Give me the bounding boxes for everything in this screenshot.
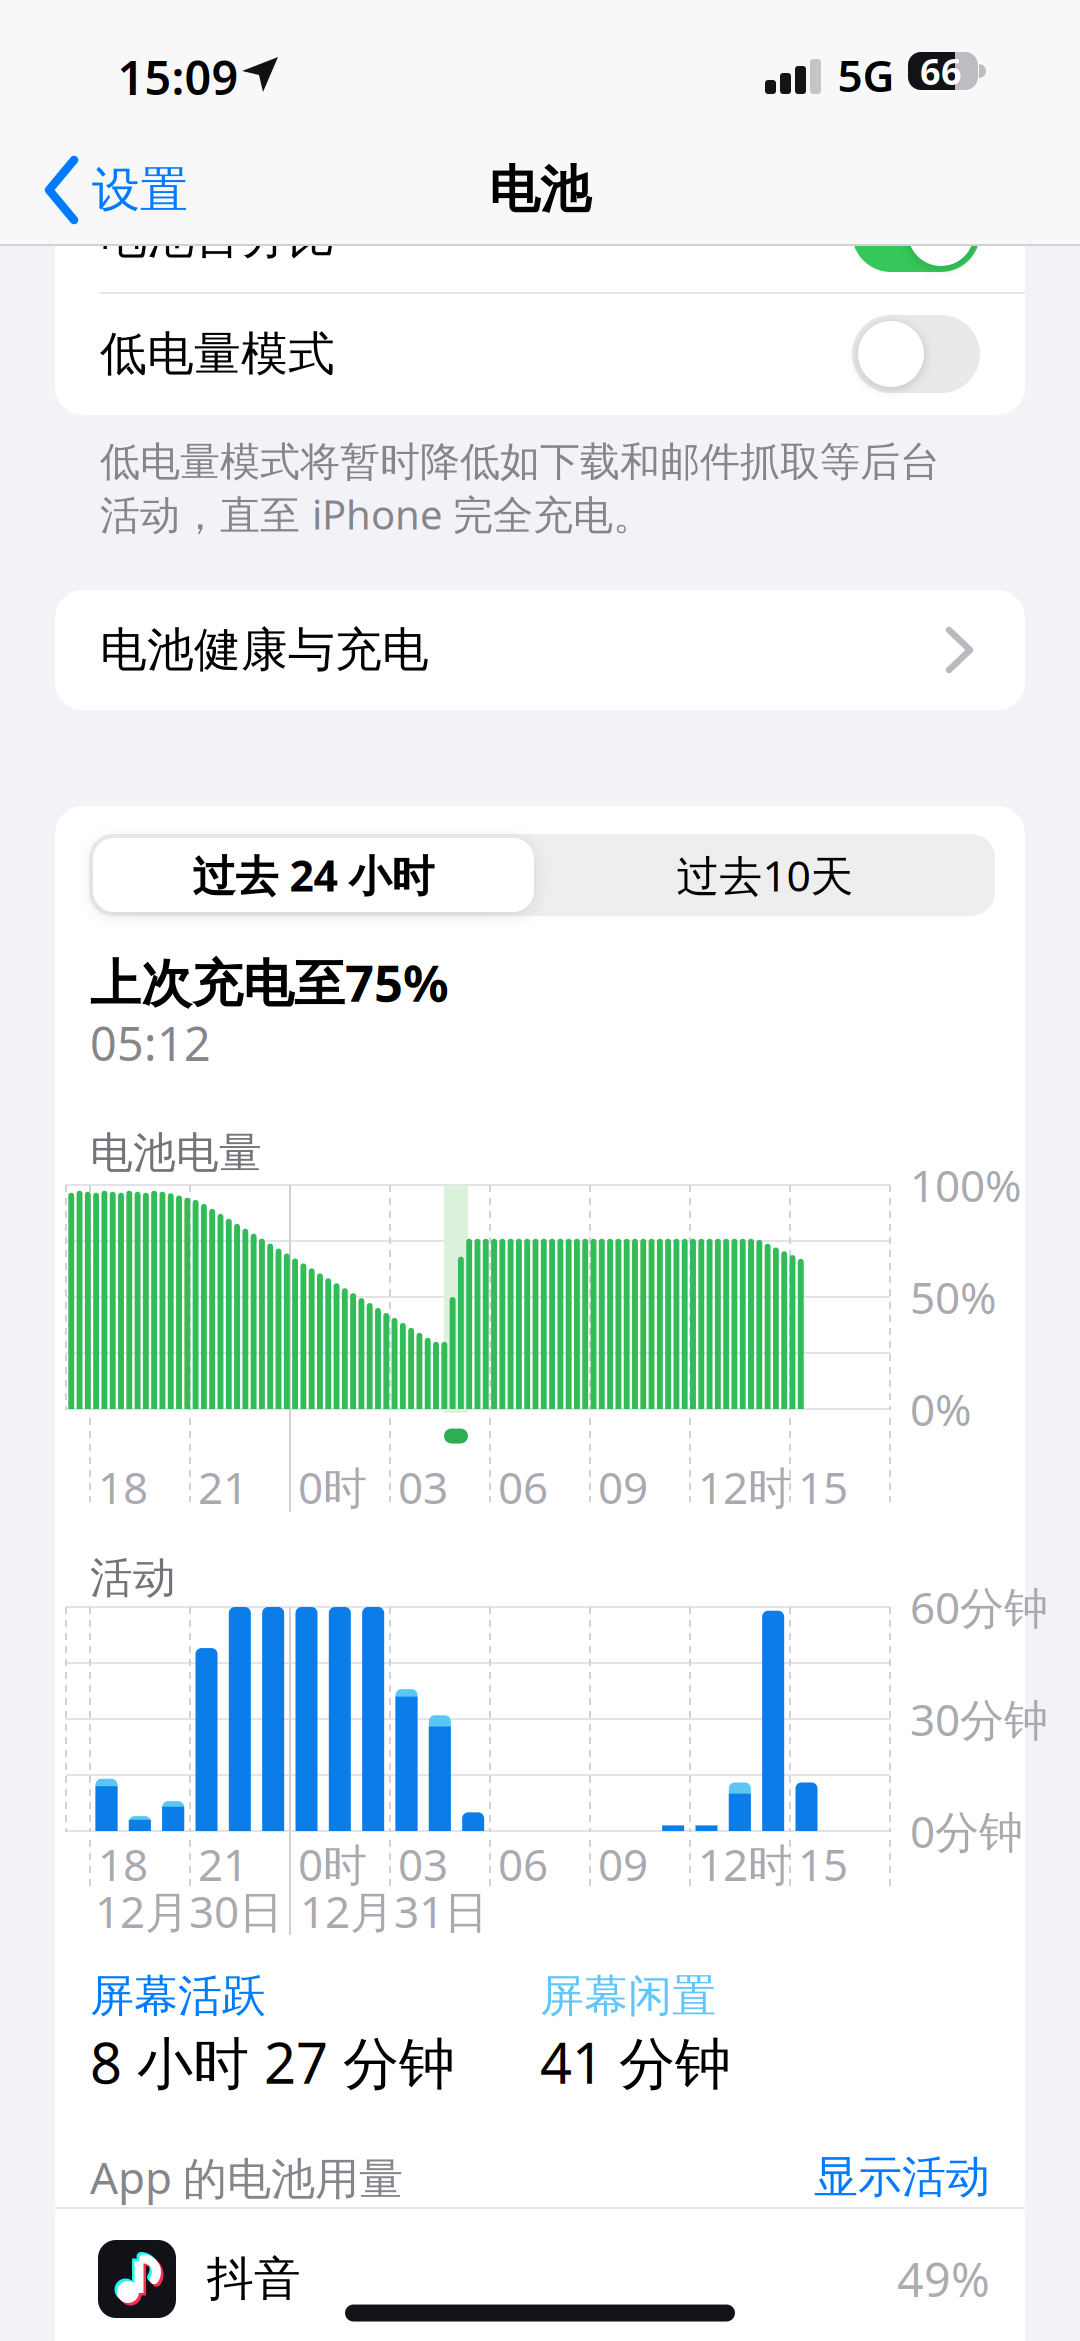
button[interactable]: 低电量模式: [852, 315, 980, 393]
staticText: 5G: [837, 46, 894, 104]
staticText: 15: [798, 1835, 848, 1893]
staticText: 屏幕活跃: [90, 1969, 266, 2023]
staticText: 电池电量: [90, 1127, 262, 1179]
staticText: 05:12: [90, 1012, 211, 1074]
staticText: 设置: [92, 160, 188, 219]
staticText: 0时: [298, 1458, 367, 1516]
staticText: 低电量模式: [100, 325, 335, 383]
staticText: 15:09: [117, 46, 238, 108]
staticText: 0时: [298, 1835, 367, 1893]
staticText: 8 小时 27 分钟: [90, 2025, 455, 2099]
staticText: 03: [398, 1835, 448, 1893]
staticText: 09: [598, 1458, 648, 1516]
staticText: 30分钟: [910, 1690, 1048, 1748]
staticText: 18: [98, 1458, 148, 1516]
staticText: 100%: [910, 1156, 1022, 1214]
staticText: 屏幕闲置: [540, 1969, 716, 2023]
staticText: 0分钟: [910, 1802, 1023, 1860]
staticText: 活动，直至 iPhone 完全充电。: [100, 487, 653, 540]
staticText: 低电量模式将暂时降低如下载和邮件抓取等后台: [100, 437, 940, 486]
staticText: 12时: [698, 1835, 792, 1893]
staticText: 12时: [698, 1458, 792, 1516]
staticText: 上次充电至75%: [90, 948, 449, 1016]
button[interactable]: 过去 24 小时: [93, 838, 534, 912]
staticText: 21: [198, 1458, 248, 1516]
staticText: 显示活动: [814, 2150, 990, 2204]
staticText: 电池健康与充电: [100, 621, 429, 679]
staticText: 抖音: [207, 2250, 301, 2308]
staticText: 09: [598, 1835, 648, 1893]
staticText: 60分钟: [910, 1578, 1048, 1636]
staticText: 过去 24 小时: [192, 847, 434, 903]
button[interactable]: 设置: [48, 158, 188, 222]
staticText: 电池百分比: [100, 208, 335, 266]
staticText: App 的电池用量: [90, 2148, 403, 2206]
button[interactable]: 显示活动: [690, 2150, 990, 2204]
staticText: 50%: [910, 1268, 997, 1326]
staticText: 41 分钟: [540, 2025, 731, 2099]
button[interactable]: 电池健康与充电: [55, 590, 1025, 710]
staticText: 活动: [90, 1552, 176, 1604]
staticText: 12月31日: [300, 1882, 488, 1940]
staticText: 06: [498, 1458, 548, 1516]
staticText: 21: [198, 1835, 248, 1893]
button[interactable]: 抖音: [55, 2219, 1025, 2339]
staticText: 06: [498, 1835, 548, 1893]
staticText: 18: [98, 1835, 148, 1893]
button[interactable]: 电池百分比: [852, 194, 980, 272]
staticText: 66: [920, 47, 962, 95]
staticText: 12月30日: [95, 1882, 283, 1940]
staticText: 49%: [897, 2248, 990, 2310]
staticText: 03: [398, 1458, 448, 1516]
staticText: 电池: [489, 159, 591, 221]
staticText: 过去10天: [676, 847, 853, 903]
staticText: 15: [798, 1458, 848, 1516]
staticText: 0%: [910, 1380, 972, 1438]
button[interactable]: 过去10天: [545, 838, 985, 912]
